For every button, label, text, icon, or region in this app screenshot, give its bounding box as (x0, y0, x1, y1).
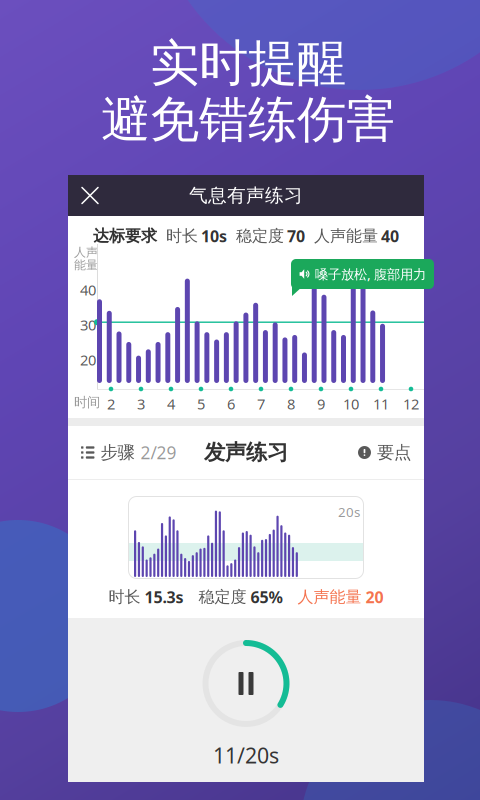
button[interactable]: Close (68, 175, 112, 216)
staticText: 实时提醒 (150, 33, 346, 94)
staticText: 40 (80, 280, 96, 299)
staticText: 6 (227, 394, 235, 413)
staticText: 2/29 (140, 441, 176, 464)
staticText: 3 (137, 394, 145, 413)
staticText: 65% (250, 586, 282, 608)
button[interactable]: 要点 (345, 426, 424, 479)
staticText: 7 (257, 394, 265, 413)
staticText: 4 (167, 394, 175, 413)
button[interactable]: 步骤 (68, 426, 189, 479)
staticText: 嗓子放松, 腹部用力 (315, 265, 426, 283)
staticText: 15.3s (144, 586, 183, 608)
staticText: 稳定度 (198, 587, 246, 607)
staticText: 发声练习 (204, 439, 288, 466)
staticText: 70 (287, 225, 305, 247)
staticText: 人声能量 (297, 587, 361, 607)
staticText: 11 (373, 394, 389, 413)
staticText: 11/20s (213, 741, 279, 769)
staticText: 人声 (74, 245, 98, 260)
staticText: 达标要求 (93, 226, 157, 246)
staticText: 5 (197, 394, 205, 413)
staticText: 12 (403, 394, 419, 413)
staticText: 时间 (74, 394, 100, 410)
staticText: 20 (80, 350, 96, 369)
staticText: 20 (365, 586, 383, 608)
staticText: 要点 (377, 442, 411, 463)
staticText: 步骤 (100, 442, 134, 463)
staticText: 稳定度 (236, 226, 284, 246)
staticText: 30 (80, 315, 96, 334)
staticText: 10 (343, 394, 359, 413)
staticText: 能量 (74, 258, 98, 272)
staticText: 时长 (108, 587, 140, 607)
staticText: 气息有声练习 (189, 184, 303, 207)
staticText: 20s (338, 503, 360, 521)
button[interactable]: Pause (202, 640, 289, 727)
staticText: 8 (287, 394, 295, 413)
staticText: 时长 (166, 226, 198, 246)
staticText: 避免错练伤害 (101, 90, 395, 150)
staticText: 10s (201, 225, 227, 247)
staticText: 9 (317, 394, 325, 413)
staticText: 人声能量 (314, 226, 378, 246)
staticText: 40 (381, 225, 399, 247)
staticText: 2 (107, 394, 115, 413)
